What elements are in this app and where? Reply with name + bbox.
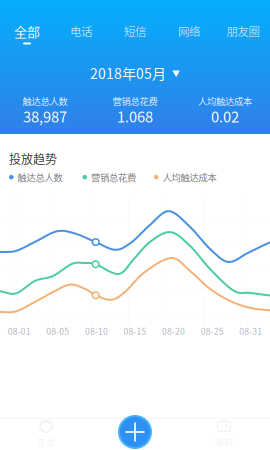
staticText: 08-10 [85,325,108,337]
staticText: 08-31 [239,325,262,337]
staticText: 触达总人数 [22,94,67,108]
button[interactable]: 全部 [0,0,54,48]
button[interactable]: Add [117,414,153,450]
button[interactable]: 短信 [108,0,162,48]
staticText: ▼ [172,67,180,79]
staticText: 我的 [215,436,233,448]
staticText: 0.02 [211,105,239,127]
button[interactable]: 2018年05月 [82,64,188,82]
staticText: 触达总人数 [17,170,62,184]
staticText: 2018年05月 [90,63,166,83]
staticText: 电话 [70,23,92,39]
staticText: 08-20 [162,325,185,337]
staticText: 1.068 [117,105,153,127]
staticText: 短信 [124,23,146,39]
staticText: 08-15 [123,325,146,337]
staticText: 营销总花费 [112,94,157,108]
staticText: 08-25 [201,325,224,337]
button[interactable]: 电话 [54,0,108,48]
staticText: 08-05 [46,325,69,337]
staticText: 首页 [37,436,55,448]
staticText: 朋友圈 [226,23,259,39]
button[interactable]: 朋友圈 [216,0,270,48]
staticText: 投放趋势 [9,150,57,167]
staticText: 全部 [14,21,40,40]
staticText: 08-01 [8,325,31,337]
button[interactable]: 网络 [162,0,216,48]
staticText: 人均触达成本 [198,94,252,108]
staticText: 网络 [178,23,200,39]
staticText: 人均触达成本 [162,170,216,184]
staticText: 38,987 [23,105,67,127]
staticText: 营销总花费 [91,170,136,184]
